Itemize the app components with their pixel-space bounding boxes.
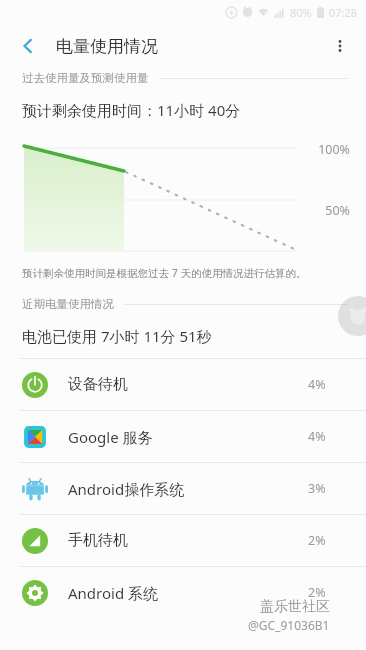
staticText: 2% <box>308 584 326 601</box>
staticText: 4% <box>308 376 326 393</box>
button[interactable]: Google 服务 <box>0 411 366 462</box>
button[interactable]: 设备待机 <box>0 359 366 410</box>
staticText: 电池已使用 7小时 11分 51秒 <box>22 326 212 346</box>
staticText: 预计剩余使用时间是根据您过去 7 天的使用情况进行估算的。 <box>22 266 307 280</box>
button[interactable]: Android操作系统 <box>0 463 366 514</box>
staticText: Google 服务 <box>68 427 153 447</box>
button[interactable]: Back <box>8 26 48 66</box>
staticText: 100% <box>318 141 350 158</box>
staticText: 80% <box>290 5 312 20</box>
staticText: Android操作系统 <box>68 479 185 499</box>
staticText: @GC_91036B1 <box>248 617 330 633</box>
staticText: 设备待机 <box>68 375 128 394</box>
staticText: 电量使用情况 <box>56 36 158 57</box>
staticText: 07:28 <box>329 5 358 20</box>
button[interactable]: Android 系统 <box>0 567 366 618</box>
staticText: 2% <box>308 532 326 549</box>
button[interactable]: Floating assistant <box>338 296 366 336</box>
staticText: 预计剩余使用时间：11小时 40分 <box>22 100 241 120</box>
staticText: Android 系统 <box>68 583 159 603</box>
staticText: 过去使用量及预测使用量 <box>22 71 149 85</box>
staticText: 50% <box>325 202 350 219</box>
staticText: 手机待机 <box>68 531 128 550</box>
button[interactable]: More options <box>320 26 360 66</box>
button[interactable]: 手机待机 <box>0 515 366 566</box>
staticText: 3% <box>308 480 326 497</box>
staticText: 4% <box>308 428 326 445</box>
staticText: 盖乐世社区 <box>260 598 330 616</box>
staticText: 近期电量使用情况 <box>22 297 114 311</box>
